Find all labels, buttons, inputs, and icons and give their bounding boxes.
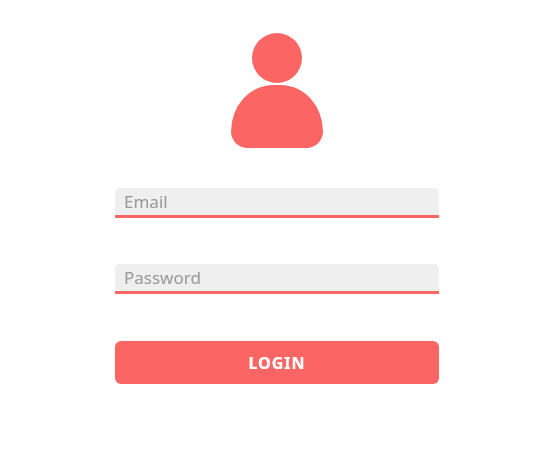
button[interactable]: LOGIN	[115, 341, 439, 384]
staticText: Password	[124, 266, 201, 289]
staticText: LOGIN	[248, 352, 306, 374]
button[interactable]: Email	[115, 188, 439, 218]
other: User avatar	[231, 33, 323, 148]
staticText: Email	[124, 190, 168, 213]
button[interactable]: Password	[115, 264, 439, 294]
